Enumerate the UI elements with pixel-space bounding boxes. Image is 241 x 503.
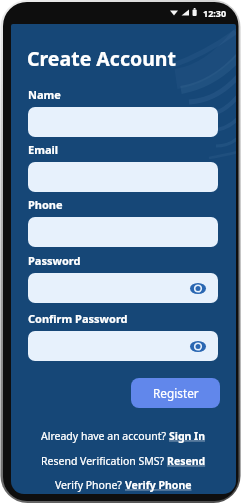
button[interactable] xyxy=(28,107,218,137)
button[interactable] xyxy=(28,331,218,361)
staticText: Name xyxy=(28,87,61,102)
button[interactable]: Resend Verification SMS? xyxy=(41,454,206,468)
button[interactable] xyxy=(28,217,218,247)
button[interactable] xyxy=(28,162,218,192)
staticText: Already have an account? xyxy=(41,429,169,443)
staticText: Resend xyxy=(167,454,206,468)
button[interactable]: Verify Phone? xyxy=(55,478,192,492)
staticText: Create Account xyxy=(27,45,176,72)
staticText: Email xyxy=(28,142,59,157)
staticText: Phone xyxy=(28,197,63,212)
staticText: Register xyxy=(153,385,199,401)
button[interactable]: Already have an account? xyxy=(41,429,206,443)
button[interactable]: Register xyxy=(131,378,220,408)
staticText: Verify Phone? xyxy=(55,478,125,492)
button[interactable] xyxy=(28,273,218,303)
staticText: 12:30 xyxy=(203,7,227,19)
staticText: Password xyxy=(28,253,81,268)
staticText: Sign In xyxy=(169,429,206,443)
staticText: Verify Phone xyxy=(125,478,192,492)
staticText: Confirm Password xyxy=(28,311,128,326)
staticText: Resend Verification SMS? xyxy=(41,454,167,468)
